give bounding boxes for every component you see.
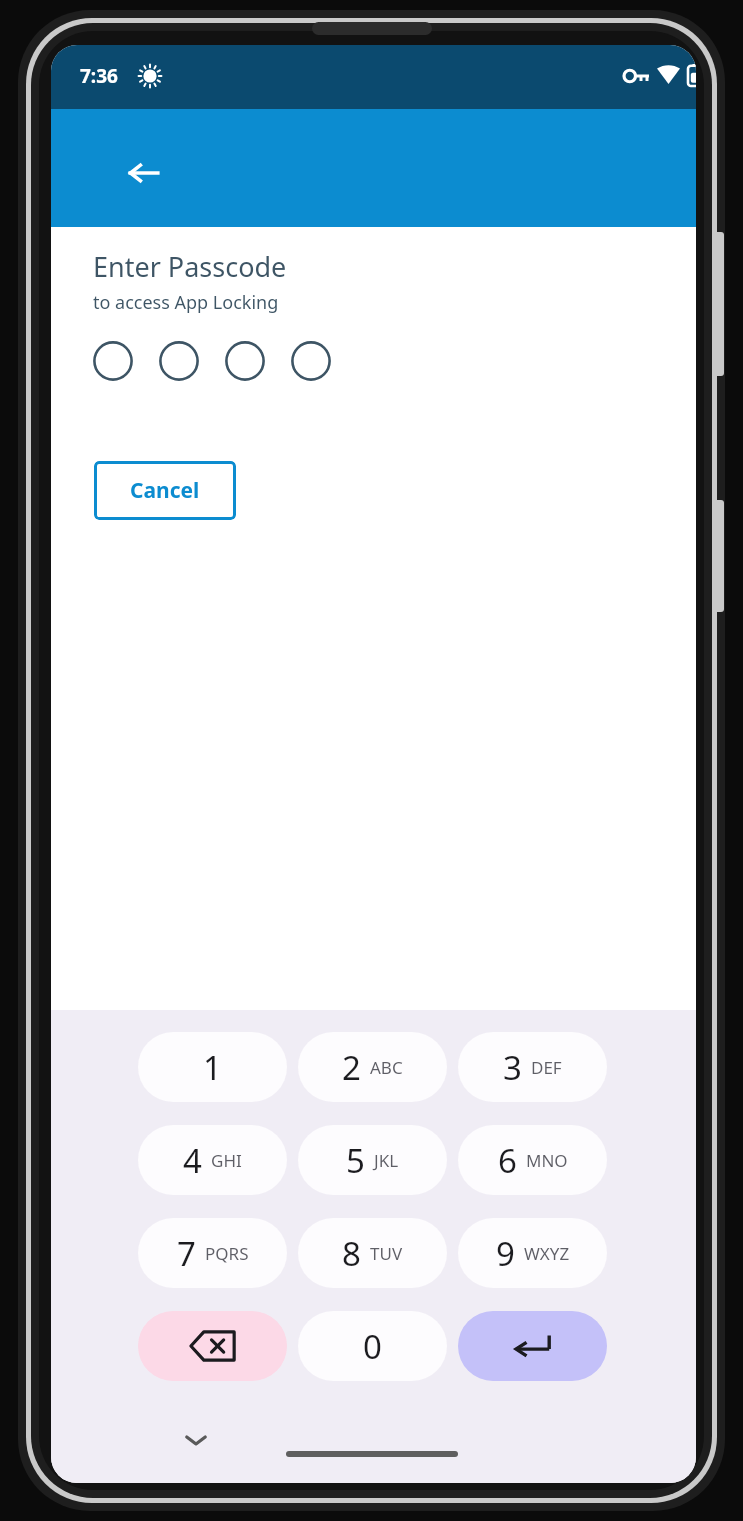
staticText: 6 [498,1138,517,1183]
button[interactable]: 0 [298,1311,447,1381]
button[interactable]: Cancel [94,461,236,520]
button[interactable]: 2 [298,1032,447,1102]
staticText: 5 [346,1138,365,1183]
button[interactable]: Backspace [138,1311,287,1381]
button[interactable]: 1 [138,1032,287,1102]
button[interactable]: Enter [458,1311,607,1381]
staticText: 4 [183,1138,202,1183]
button[interactable]: Hide keyboard [166,1410,226,1470]
button[interactable]: 3 [458,1032,607,1102]
button[interactable]: 4 [138,1125,287,1195]
staticText: Enter Passcode [93,248,287,285]
staticText: GHI [211,1149,242,1172]
button[interactable]: 7 [138,1218,287,1288]
button[interactable]: Back [113,142,175,204]
button[interactable]: 6 [458,1125,607,1195]
staticText: ABC [370,1056,403,1079]
button[interactable]: 5 [298,1125,447,1195]
staticText: 1 [203,1045,222,1090]
staticText: 2 [342,1045,361,1090]
staticText: PQRS [205,1242,249,1265]
staticText: 7:36 [80,63,118,89]
staticText: 0 [363,1324,382,1369]
staticText: MNO [526,1149,568,1172]
staticText: to access App Locking [93,290,279,315]
staticText: JKL [374,1149,399,1172]
staticText: Cancel [130,476,200,505]
staticText: 3 [503,1045,522,1090]
staticText: WXYZ [524,1242,570,1265]
button[interactable]: 9 [458,1218,607,1288]
staticText: TUV [370,1242,403,1265]
staticText: 8 [342,1231,361,1276]
staticText: 7 [177,1231,196,1276]
staticText: 9 [496,1231,515,1276]
staticText: DEF [531,1056,562,1079]
button[interactable]: 8 [298,1218,447,1288]
